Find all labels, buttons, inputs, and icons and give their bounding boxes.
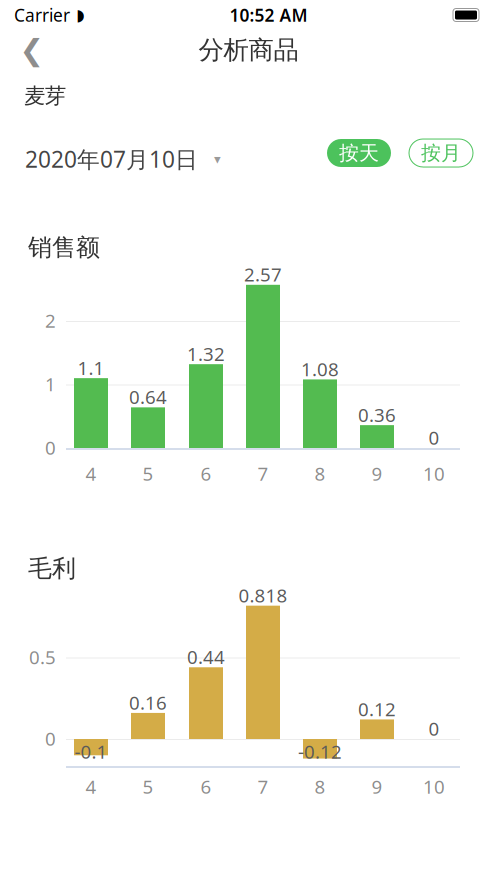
staticText: 0.44 — [187, 644, 225, 669]
staticText: 0.12 — [358, 696, 396, 721]
staticText: 0.64 — [129, 384, 167, 409]
staticText: 5 — [142, 461, 153, 486]
staticText: ▾ — [214, 151, 221, 167]
staticText: 9 — [371, 774, 382, 799]
staticText: 7 — [257, 461, 268, 486]
staticText: 4 — [85, 461, 96, 486]
button[interactable]: 按天 — [327, 139, 391, 167]
staticText: ◗ — [70, 6, 84, 24]
staticText: 6 — [200, 461, 211, 486]
staticText: 1.1 — [77, 355, 104, 380]
staticText: 0 — [428, 716, 439, 741]
staticText: 0 — [45, 435, 56, 460]
staticText: 0 — [428, 425, 439, 450]
staticText: 1.32 — [187, 341, 225, 366]
staticText: 2.57 — [244, 262, 282, 287]
staticText: ❮ — [19, 33, 44, 67]
staticText: 1 — [45, 372, 56, 396]
staticText: 0 — [45, 726, 56, 751]
button[interactable]: 2020年07月10日 — [23, 136, 223, 182]
staticText: -0.12 — [298, 739, 342, 764]
staticText: 5 — [142, 774, 153, 799]
staticText: 销售额 — [28, 233, 100, 262]
staticText: 10 — [423, 461, 445, 486]
staticText: 10 — [423, 774, 445, 799]
staticText: 0.5 — [29, 645, 56, 669]
staticText: 10:52 AM — [229, 3, 307, 26]
staticText: 毛利 — [28, 554, 76, 583]
button[interactable]: Back — [4, 25, 60, 75]
staticText: 0.16 — [129, 690, 167, 715]
staticText: 按月 — [421, 141, 461, 165]
staticText: 按天 — [339, 141, 379, 165]
staticText: 8 — [314, 774, 325, 799]
staticText: -0.1 — [74, 739, 107, 764]
staticText: 2020年07月10日 — [25, 144, 198, 174]
staticText: Carrier — [14, 3, 70, 26]
staticText: 分析商品 — [198, 34, 298, 65]
staticText: 9 — [371, 461, 382, 486]
staticText: 8 — [314, 461, 325, 486]
staticText: 7 — [257, 774, 268, 799]
staticText: 2 — [45, 308, 56, 333]
staticText: 0.818 — [238, 583, 287, 608]
staticText: 麦芽 — [24, 83, 66, 109]
staticText: 6 — [200, 774, 211, 799]
staticText: 0.36 — [358, 402, 396, 427]
staticText: 1.08 — [301, 356, 339, 381]
button[interactable]: 按月 — [409, 139, 473, 167]
staticText: 4 — [85, 774, 96, 799]
